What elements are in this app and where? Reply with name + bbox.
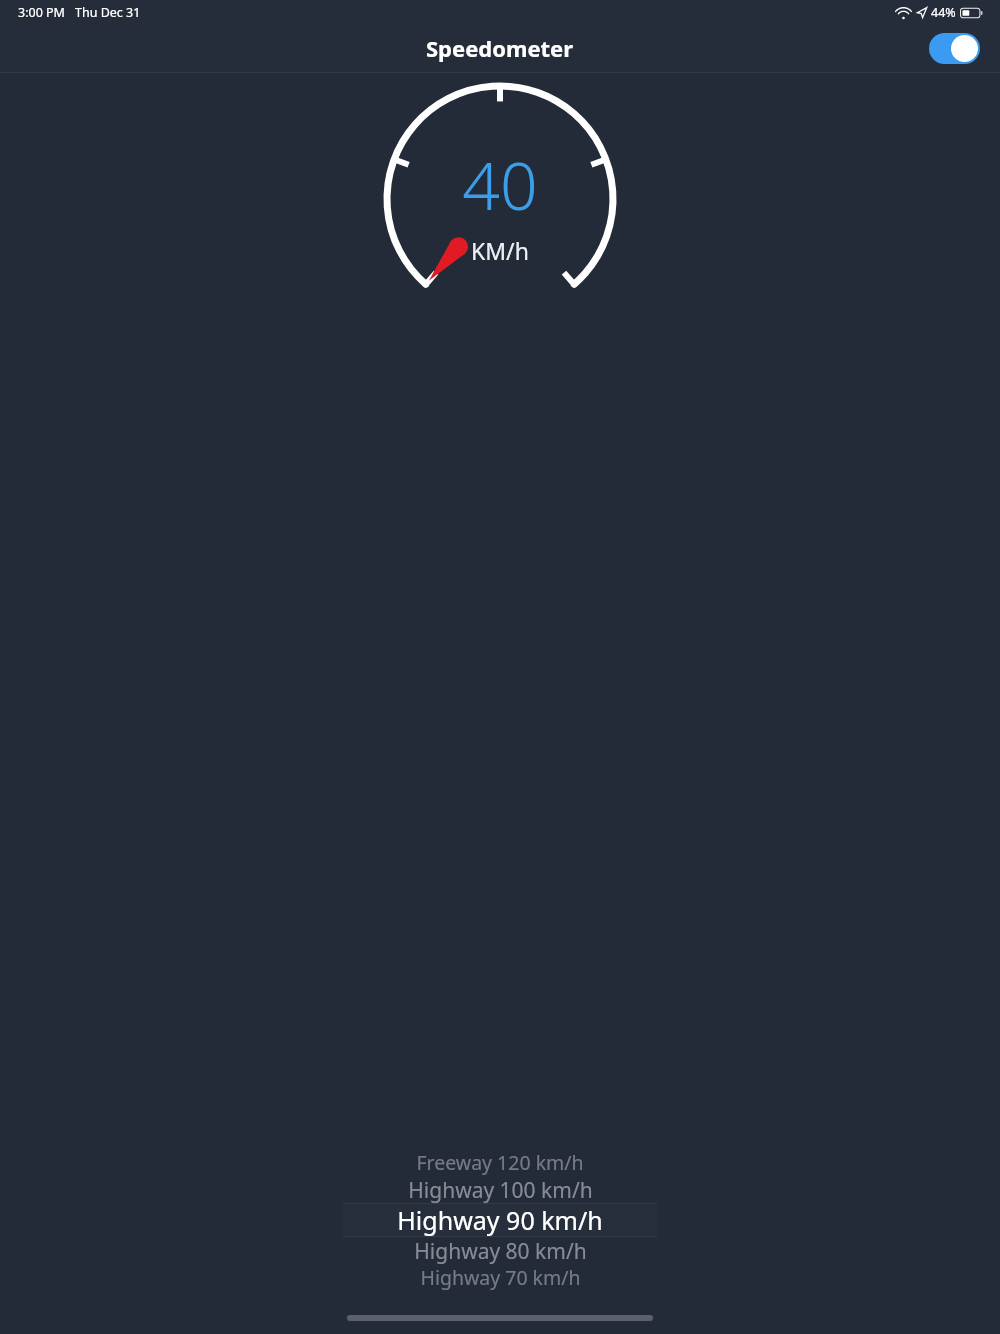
staticText: KM/h xyxy=(471,235,529,266)
button[interactable]: Freeway 120 km/h xyxy=(0,1149,1000,1176)
button[interactable]: Toggle speedometer xyxy=(929,33,980,64)
staticText: Freeway 120 km/h xyxy=(416,1149,584,1176)
staticText: Speedometer xyxy=(426,33,574,63)
staticText: 40 xyxy=(462,139,538,229)
button[interactable]: Highway 100 km/h xyxy=(0,1176,1000,1203)
staticText: Highway 80 km/h xyxy=(414,1237,587,1264)
button[interactable]: Highway 70 km/h xyxy=(0,1264,1000,1291)
button[interactable]: Highway 90 km/h xyxy=(0,1203,1000,1237)
staticText: 3:00 PM xyxy=(18,4,65,21)
staticText: Thu Dec 31 xyxy=(75,4,141,21)
button[interactable]: Highway 80 km/h xyxy=(0,1237,1000,1264)
staticText: Highway 100 km/h xyxy=(408,1176,593,1203)
staticText: 44% xyxy=(931,4,956,21)
staticText: Highway 90 km/h xyxy=(397,1203,603,1237)
staticText: Highway 70 km/h xyxy=(420,1264,581,1291)
